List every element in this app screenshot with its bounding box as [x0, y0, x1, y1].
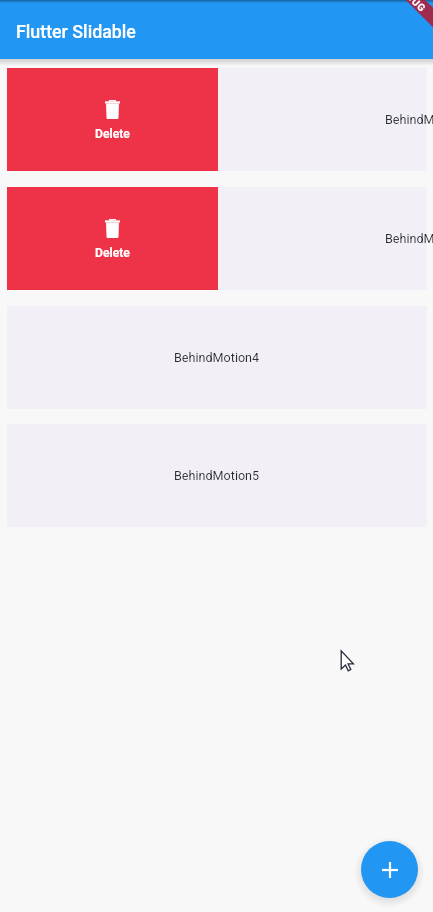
button[interactable]: Delete: [7, 68, 427, 171]
staticText: BehindMotion4: [174, 350, 260, 365]
button[interactable]: Add item: [361, 841, 418, 898]
button[interactable]: BehindMotion5: [7, 424, 427, 527]
staticText: BehindMotion2: [385, 231, 433, 246]
button[interactable]: Delete: [7, 187, 218, 290]
staticText: Delete: [95, 246, 130, 260]
staticText: Delete: [95, 127, 130, 141]
button[interactable]: BehindMotion4: [7, 306, 427, 409]
button[interactable]: Delete: [7, 187, 427, 290]
staticText: Flutter Slidable: [16, 21, 136, 42]
button[interactable]: Delete: [7, 68, 218, 171]
staticText: BehindMotion1: [385, 112, 433, 127]
staticText: BehindMotion5: [174, 468, 260, 483]
